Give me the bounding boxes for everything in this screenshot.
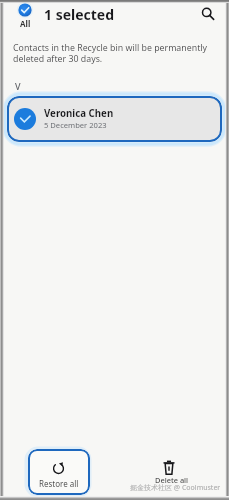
button[interactable]: Search (196, 2, 220, 26)
staticText: V (15, 80, 21, 92)
staticText: Delete all (155, 475, 189, 485)
button[interactable]: Veronica Chen (7, 96, 222, 142)
staticText: Restore all (39, 478, 79, 489)
button[interactable]: All (17, 2, 33, 29)
staticText: 1 selected (44, 5, 115, 24)
staticText: Veronica Chen (44, 107, 114, 120)
button[interactable]: Delete all (150, 454, 194, 492)
staticText: All (20, 18, 31, 29)
staticText: Contacts in the Recycle bin will be perm… (13, 42, 218, 64)
staticText: 掘金技术社区 @ Coolmuster (130, 483, 221, 493)
button[interactable]: Restore all (28, 449, 90, 495)
staticText: 5 December 2023 (44, 120, 107, 130)
